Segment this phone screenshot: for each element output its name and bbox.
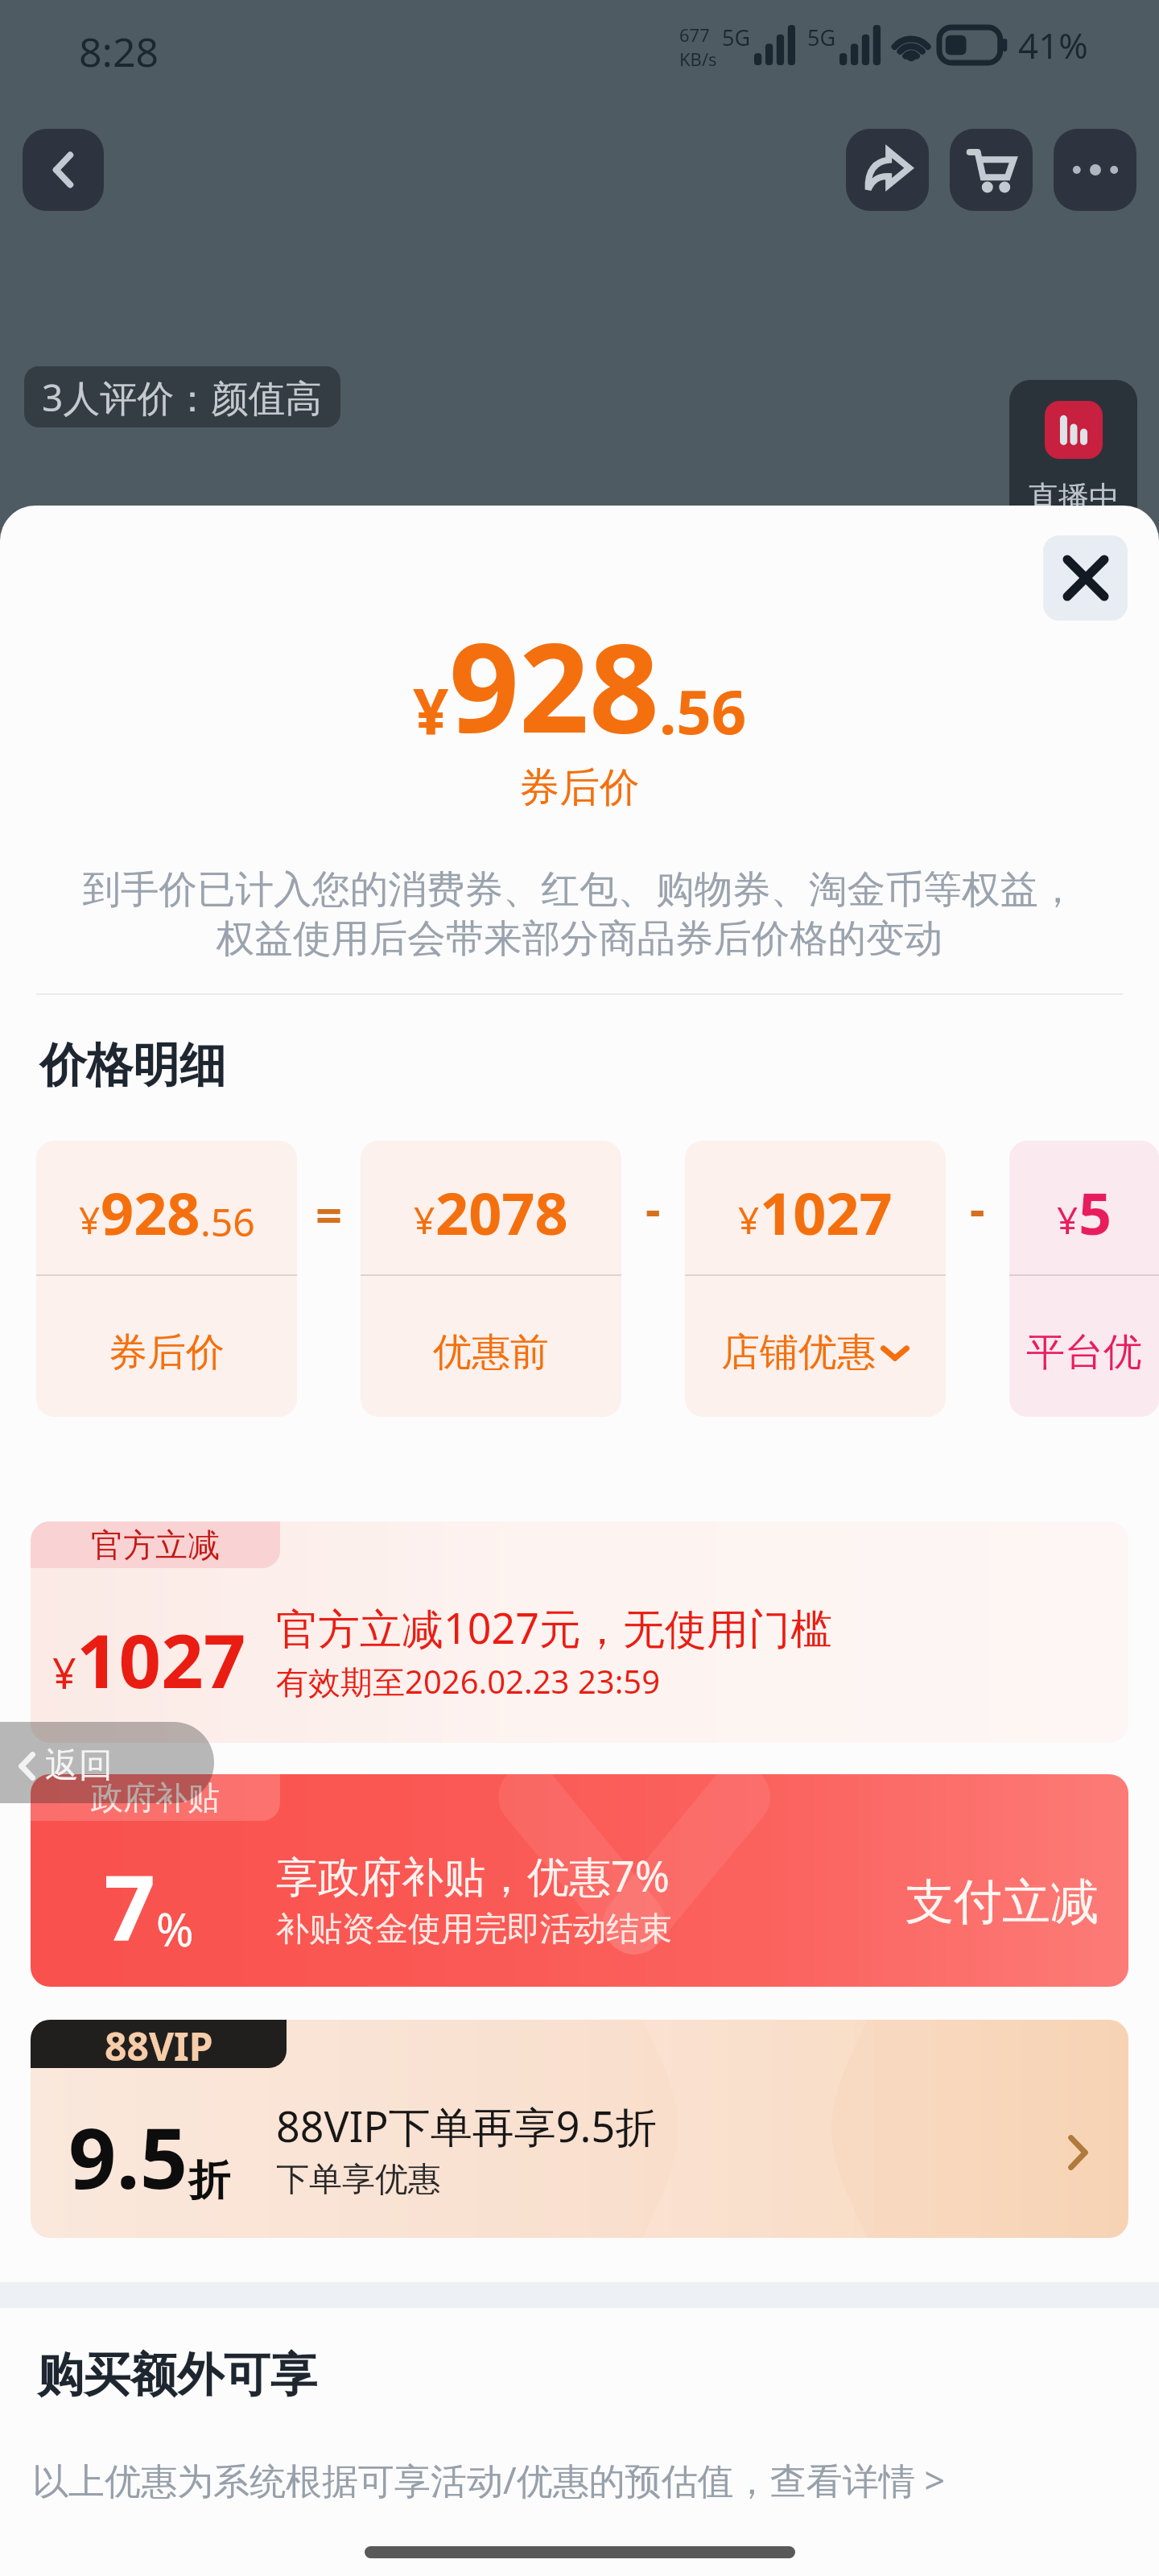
staticText: 直播中: [1028, 478, 1120, 517]
staticText: ¥: [79, 1195, 101, 1245]
staticText: 3人评价：颜值高: [42, 372, 323, 423]
staticText: 88VIP: [105, 2020, 213, 2068]
button[interactable]: Back: [23, 129, 104, 211]
button[interactable]: 以上优惠为系统根据可享活动/优惠的预估值，查看详情 >: [32, 2455, 946, 2504]
staticText: 券后价: [109, 1328, 225, 1377]
staticText: 返回: [45, 1744, 113, 1787]
button[interactable]: 3人评价：颜值高: [24, 366, 340, 427]
staticText: 1027: [76, 1609, 246, 1710]
button[interactable]: Close: [1043, 535, 1128, 621]
staticText: 优惠前: [433, 1328, 549, 1377]
staticText: 政府补贴: [91, 1777, 220, 1818]
staticText: 补贴资金使用完即活动结束: [276, 1909, 672, 1951]
staticText: 价格明细: [39, 1036, 226, 1095]
staticText: ¥: [52, 1644, 76, 1701]
staticText: 官方立减1027元，无使用门槛: [276, 1599, 832, 1656]
staticText: 7: [104, 1843, 156, 1967]
button[interactable]: 政府补贴: [31, 1774, 1128, 1987]
staticText: 928: [449, 602, 659, 769]
staticText: ¥: [1057, 1195, 1079, 1245]
staticText: 677: [679, 23, 710, 47]
button[interactable]: ¥: [1009, 1141, 1159, 1417]
staticText: =: [316, 1183, 343, 1246]
staticText: 支付立减: [905, 1872, 1099, 1933]
staticText: 下单享优惠: [276, 2159, 441, 2201]
button[interactable]: ¥: [36, 1141, 297, 1417]
staticText: .56: [200, 1195, 255, 1248]
button[interactable]: 官方立减: [31, 1521, 1128, 1743]
staticText: 5G: [722, 23, 751, 52]
staticText: 有效期至2026.02.23 23:59: [276, 1659, 661, 1703]
staticText: 8:28: [79, 24, 159, 79]
staticText: 9.5: [68, 2099, 188, 2214]
staticText: ¥: [738, 1195, 760, 1245]
staticText: 店铺优惠: [721, 1328, 876, 1377]
staticText: ¥: [414, 1195, 435, 1245]
staticText: 5G: [807, 23, 836, 52]
button[interactable]: 直播中: [1009, 380, 1137, 533]
staticText: 到手价已计入您的消费券、红包、购物券、淘金币等权益， 权益使用后会带来部分商品券…: [39, 865, 1120, 963]
button[interactable]: 88VIP: [31, 2020, 1128, 2238]
staticText: 1027: [760, 1173, 893, 1252]
staticText: 购买额外可享: [37, 2346, 317, 2405]
button[interactable]: Share: [846, 129, 929, 211]
staticText: %: [156, 1898, 194, 1959]
staticText: -: [645, 1176, 661, 1240]
staticText: 5: [1079, 1173, 1112, 1252]
button[interactable]: 返回: [0, 1722, 214, 1803]
button[interactable]: ¥: [361, 1141, 621, 1417]
staticText: 券后价: [519, 762, 640, 813]
staticText: 享政府补贴，优惠7%: [276, 1847, 670, 1904]
staticText: ¥: [413, 668, 449, 753]
staticText: 官方立减: [91, 1525, 220, 1565]
staticText: -: [970, 1176, 985, 1240]
staticText: 41%: [1018, 21, 1088, 69]
staticText: 2078: [435, 1173, 568, 1252]
staticText: 折: [188, 2154, 230, 2207]
staticText: KB/s: [679, 47, 717, 71]
button[interactable]: ¥: [685, 1141, 946, 1417]
button[interactable]: More: [1054, 129, 1136, 211]
button[interactable]: Cart: [950, 129, 1033, 211]
staticText: 平台优: [1026, 1328, 1142, 1377]
staticText: .56: [659, 669, 747, 753]
staticText: 88VIP下单再享9.5折: [276, 2097, 658, 2154]
staticText: 928: [101, 1173, 200, 1252]
